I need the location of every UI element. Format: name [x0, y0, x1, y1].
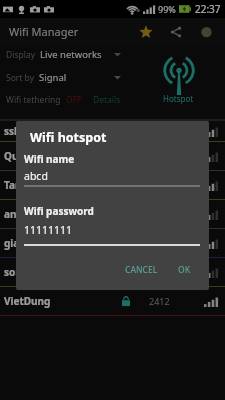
staticText: 22:37: [195, 2, 221, 16]
button[interactable]: Hotspot: [155, 45, 202, 119]
staticText: Sort by: [6, 72, 34, 84]
staticText: son: [4, 265, 22, 279]
staticText: giang: [4, 236, 33, 250]
staticText: 11111111: [24, 223, 73, 237]
button[interactable]: Favorite: [131, 18, 161, 45]
staticText: OFF: [66, 94, 82, 106]
staticText: Tam Anh: [4, 178, 48, 192]
staticText: Details: [93, 94, 121, 106]
staticText: Live networks: [40, 48, 102, 61]
staticText: Wifi name: [24, 152, 75, 166]
staticText: Wifi hotspot: [30, 129, 107, 146]
staticText: 2412: [149, 295, 170, 307]
button[interactable]: More options: [191, 18, 221, 45]
staticText: Quang: [4, 149, 38, 163]
button[interactable]: giang: [0, 229, 225, 258]
button[interactable]: anhduc: [0, 200, 225, 229]
staticText: anhduc: [4, 207, 41, 221]
staticText: Signal: [39, 71, 67, 84]
staticText: abcd: [24, 169, 48, 183]
staticText: VietDung: [4, 294, 51, 308]
button[interactable]: Display: [6, 43, 123, 66]
button[interactable]: Tam Anh: [0, 171, 225, 200]
staticText: sshd: [4, 124, 27, 138]
staticText: 99%: [158, 3, 176, 15]
staticText: 2437: [140, 266, 161, 278]
staticText: Hotspot: [163, 93, 194, 104]
staticText: 2412: [143, 237, 164, 249]
staticText: 2462: [148, 179, 169, 191]
button[interactable]: CANCEL: [121, 262, 162, 278]
button[interactable]: son: [0, 258, 225, 287]
button[interactable]: sshd: [0, 121, 225, 142]
staticText: CANCEL: [125, 264, 158, 276]
staticText: Wifi Manager: [9, 24, 79, 39]
button[interactable]: Share: [161, 18, 191, 45]
button[interactable]: OK: [174, 262, 195, 278]
staticText: OK: [178, 264, 191, 276]
staticText: Display: [6, 49, 35, 61]
button[interactable]: VietDung: [0, 287, 225, 316]
staticText: Wifi tethering: [6, 94, 61, 106]
staticText: Wifi password: [24, 204, 94, 218]
button[interactable]: Sort by: [6, 66, 123, 89]
button[interactable]: Quang: [0, 142, 225, 171]
